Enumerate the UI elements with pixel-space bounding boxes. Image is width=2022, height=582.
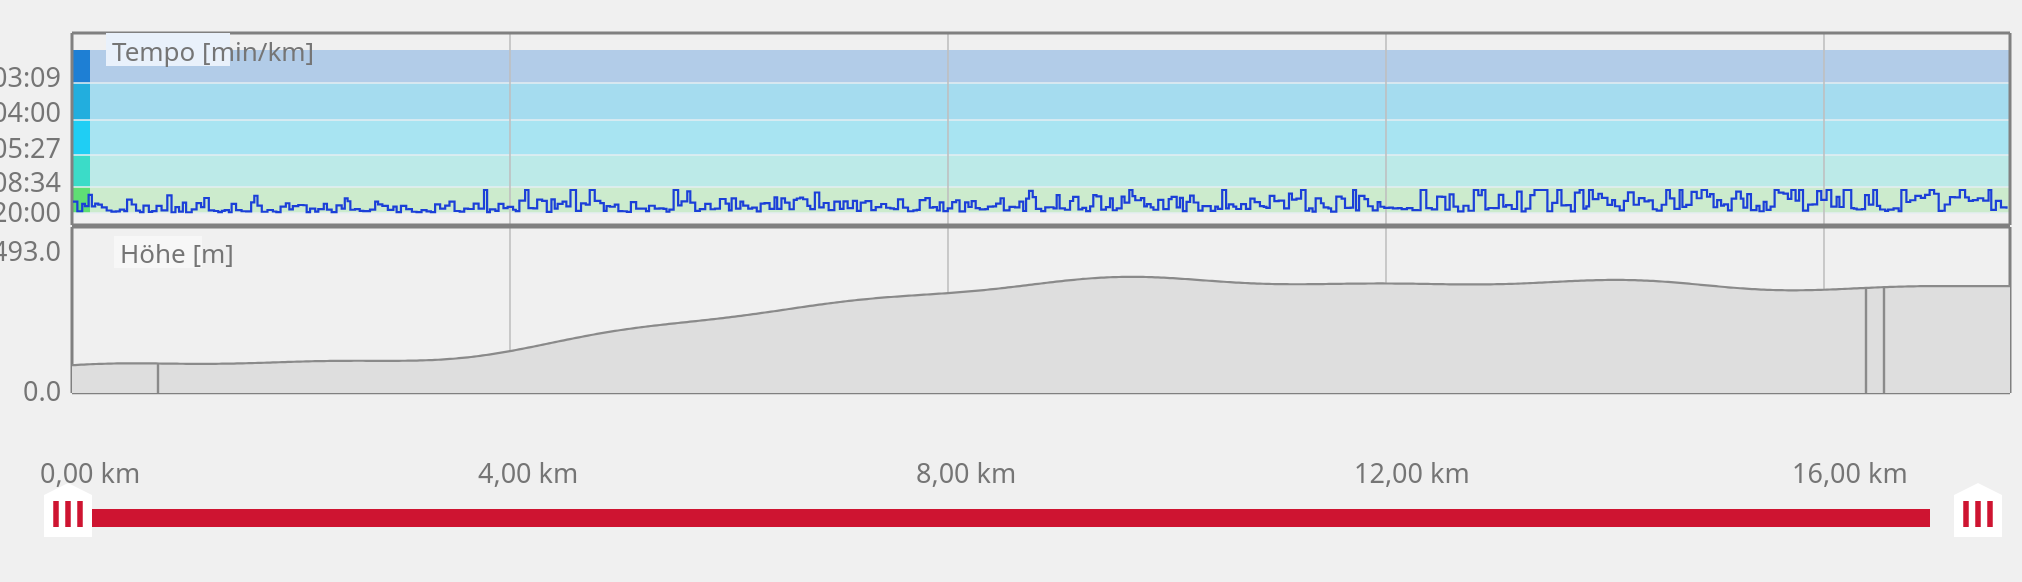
button[interactable]: Activity pace and elevation chart	[0, 0, 2022, 582]
